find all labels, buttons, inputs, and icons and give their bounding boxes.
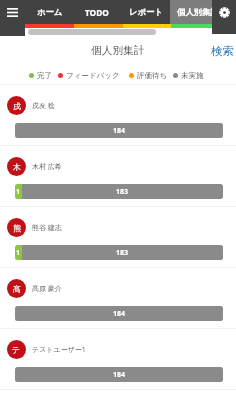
staticText: TODO: [85, 7, 109, 18]
staticText: 184: [113, 309, 126, 319]
button[interactable]: 戌: [0, 85, 236, 145]
staticText: 木村 広希: [32, 162, 62, 172]
staticText: 戌: [13, 101, 21, 111]
staticText: 184: [113, 370, 126, 380]
staticText: 個人別集計: [177, 7, 219, 17]
staticText: 未実施: [181, 71, 204, 80]
staticText: 熊谷 建志: [32, 223, 62, 233]
staticText: 184: [113, 126, 126, 136]
staticText: 個人別集計: [91, 44, 145, 57]
button[interactable]: 個人別集計: [170, 0, 226, 24]
button[interactable]: レポート: [129, 0, 163, 24]
staticText: フィードバック: [66, 71, 120, 80]
button[interactable]: Menu: [0, 0, 25, 36]
staticText: 検索: [211, 44, 234, 58]
staticText: レポート: [129, 7, 163, 17]
staticText: ホーム: [37, 7, 63, 17]
staticText: 183: [116, 248, 129, 258]
button[interactable]: テ: [0, 329, 236, 389]
staticText: 戌友 稔: [32, 101, 55, 111]
staticText: テストユーザー1: [32, 345, 86, 355]
button[interactable]: ホーム: [37, 0, 63, 24]
staticText: 髙: [13, 284, 21, 294]
staticText: 髙原 豪介: [32, 284, 62, 294]
staticText: 1: [16, 248, 21, 258]
staticText: 熊: [13, 223, 21, 233]
staticText: 1: [16, 187, 21, 197]
staticText: 完了: [37, 71, 52, 80]
button[interactable]: Settings: [212, 0, 236, 34]
staticText: 木: [13, 162, 21, 172]
staticText: 評価待ち: [137, 71, 168, 80]
button[interactable]: TODO: [85, 0, 109, 24]
button[interactable]: 熊: [0, 207, 236, 267]
button[interactable]: 髙: [0, 268, 236, 328]
staticText: 183: [116, 187, 129, 197]
button[interactable]: 木: [0, 146, 236, 206]
staticText: テ: [12, 345, 21, 355]
button[interactable]: 検索: [211, 44, 236, 58]
